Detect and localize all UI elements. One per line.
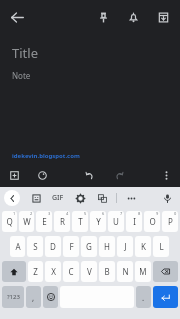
button[interactable]: Stickers — [28, 190, 44, 206]
staticText: E — [42, 216, 47, 227]
button[interactable]: S — [27, 236, 43, 257]
button[interactable]: Pin note — [88, 2, 118, 32]
staticText: H — [104, 241, 110, 252]
button[interactable]: H — [99, 236, 115, 257]
staticText: , — [32, 292, 35, 303]
button[interactable]: ?123 — [2, 286, 24, 308]
staticText: P — [168, 216, 173, 227]
button[interactable]: . — [136, 286, 151, 308]
button[interactable]: Redo — [109, 165, 129, 185]
staticText: X — [51, 266, 56, 277]
button[interactable]: Back — [0, 0, 34, 34]
button[interactable]: Settings — [72, 190, 88, 206]
button[interactable]: More options — [156, 165, 176, 185]
button[interactable]: D — [45, 236, 61, 257]
staticText: 1 — [13, 211, 16, 216]
button[interactable]: W — [19, 211, 34, 232]
staticText: M — [139, 266, 147, 277]
button[interactable]: Z — [28, 261, 43, 282]
staticText: . — [142, 292, 145, 303]
button[interactable]: Y — [90, 211, 106, 232]
staticText: 3 — [48, 211, 51, 216]
button[interactable]: N — [117, 261, 133, 282]
staticText: idekevin.blogspot.com — [12, 152, 80, 160]
staticText: 6 — [102, 211, 105, 216]
staticText: 2 — [30, 211, 33, 216]
button[interactable]: V — [81, 261, 97, 282]
button[interactable]: Backspace — [153, 261, 178, 282]
button[interactable]: P — [162, 211, 178, 232]
staticText: K — [141, 241, 146, 252]
button[interactable]: K — [135, 236, 151, 257]
button[interactable]: Archive — [148, 2, 178, 32]
staticText: 9 — [156, 211, 159, 216]
staticText: D — [50, 241, 56, 252]
staticText: N — [122, 266, 129, 277]
button[interactable]: I — [126, 211, 142, 232]
staticText: B — [104, 266, 110, 277]
button[interactable]: Add — [4, 165, 24, 185]
staticText: A — [15, 241, 21, 252]
button[interactable]: O — [144, 211, 160, 232]
button[interactable]: L — [153, 236, 169, 257]
staticText: Y — [96, 216, 101, 227]
staticText: J — [124, 241, 127, 252]
staticText: W — [23, 216, 31, 227]
button[interactable]: Enter — [153, 286, 178, 308]
button[interactable]: Undo — [79, 165, 99, 185]
button[interactable]: , — [26, 286, 41, 308]
button[interactable]: Voice input — [158, 189, 176, 207]
button[interactable]: Change color — [32, 165, 52, 185]
staticText: O — [149, 216, 156, 227]
button[interactable]: T — [72, 211, 88, 232]
button[interactable]: E — [36, 211, 52, 232]
staticText: C — [68, 266, 74, 277]
staticText: V — [87, 266, 92, 277]
button[interactable]: Emoji — [43, 286, 58, 308]
staticText: 4 — [66, 211, 69, 216]
staticText: Q — [6, 216, 13, 227]
staticText: GIF — [52, 193, 64, 203]
button[interactable]: Q — [2, 211, 17, 232]
staticText: Z — [33, 266, 38, 277]
staticText: 0 — [174, 211, 177, 216]
button[interactable]: Title — [12, 44, 38, 62]
staticText: S — [33, 241, 38, 252]
button[interactable]: R — [54, 211, 70, 232]
button[interactable]: Back — [4, 190, 20, 206]
button[interactable]: A — [10, 236, 25, 257]
button[interactable]: GIF — [50, 193, 66, 203]
button[interactable]: U — [108, 211, 124, 232]
button[interactable]: Remind me — [118, 2, 148, 32]
button[interactable]: More — [123, 190, 139, 206]
button[interactable]: C — [63, 261, 79, 282]
staticText: 5 — [84, 211, 87, 216]
staticText: F — [69, 241, 74, 252]
staticText: 7 — [120, 211, 123, 216]
button[interactable]: Translate — [94, 190, 110, 206]
staticText: T — [78, 216, 83, 227]
button[interactable]: J — [117, 236, 133, 257]
staticText: ?123 — [7, 293, 20, 301]
staticText: R — [60, 216, 65, 227]
button[interactable]: M — [135, 261, 151, 282]
staticText: 8 — [138, 211, 141, 216]
button[interactable]: B — [99, 261, 115, 282]
staticText: U — [113, 216, 119, 227]
button[interactable]: Note — [12, 70, 31, 81]
staticText: I — [133, 216, 136, 227]
button[interactable]: G — [81, 236, 97, 257]
staticText: G — [86, 241, 92, 252]
staticText: L — [159, 241, 164, 252]
button[interactable]: X — [45, 261, 61, 282]
button[interactable]: Shift — [2, 261, 26, 282]
button[interactable]: F — [63, 236, 79, 257]
